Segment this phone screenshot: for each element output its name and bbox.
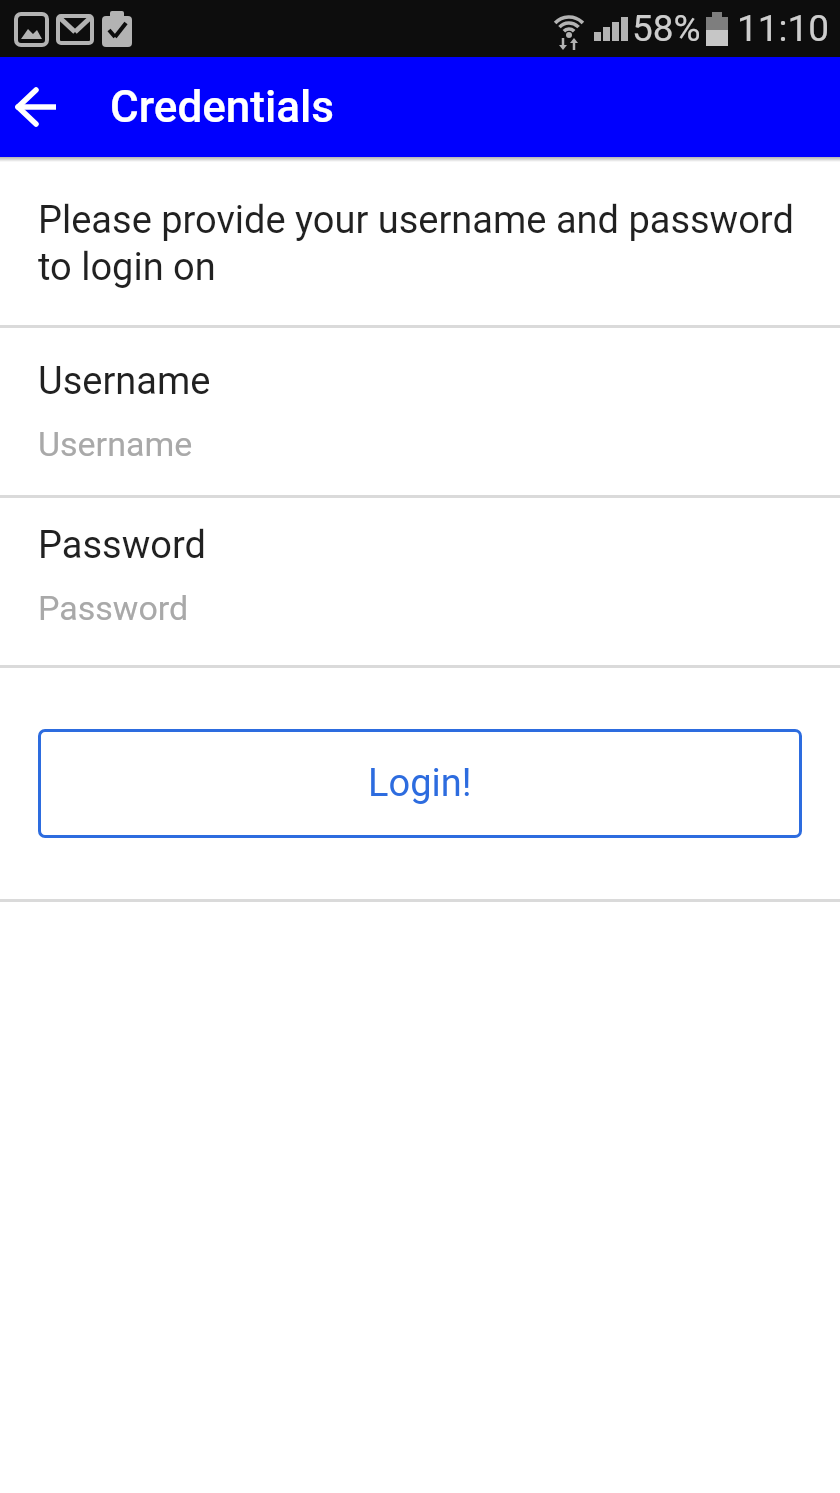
staticText: Login! [368,761,472,806]
button[interactable]: Username [0,328,840,495]
staticText: 11:10 [737,7,830,50]
staticText: Please provide your username and passwor… [38,198,794,289]
button[interactable] [14,84,60,130]
staticText: Username [38,424,193,464]
staticText: Password [38,588,189,628]
button[interactable]: Login! [38,729,802,838]
staticText: Username [38,359,211,404]
staticText: Credentials [110,81,335,133]
staticText: 58% [632,7,701,50]
button[interactable]: Password [0,498,840,665]
staticText: Password [38,523,206,568]
